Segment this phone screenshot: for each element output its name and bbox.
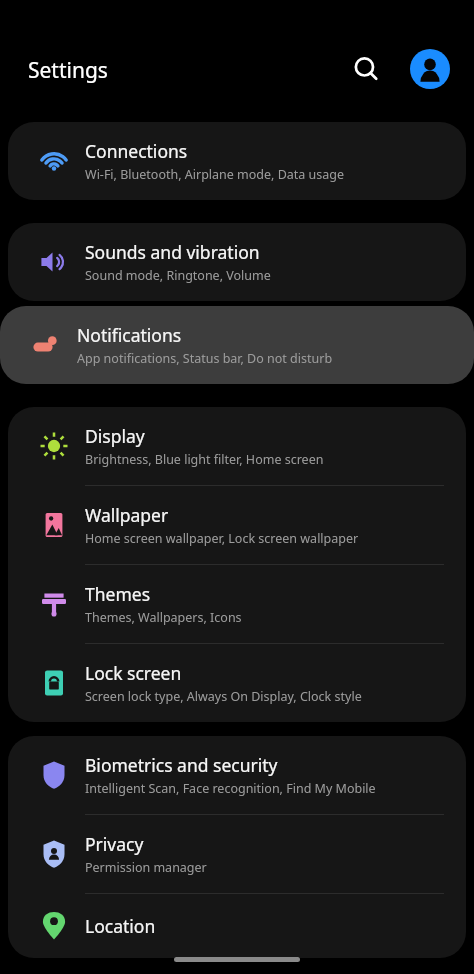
staticText: App notifications, Status bar, Do not di…	[77, 350, 333, 367]
button[interactable]: Connections	[8, 122, 466, 200]
button[interactable]: Themes	[8, 565, 466, 643]
staticText: Screen lock type, Always On Display, Clo…	[85, 688, 362, 705]
staticText: Permission manager	[85, 859, 207, 876]
staticText: Intelligent Scan, Face recognition, Find…	[85, 780, 376, 797]
staticText: Location	[85, 914, 156, 938]
button[interactable]: Sounds and vibration	[8, 223, 466, 301]
staticText: Privacy	[85, 832, 144, 856]
staticText: Sound mode, Ringtone, Volume	[85, 267, 271, 284]
button[interactable]: Location	[8, 894, 466, 958]
staticText: Connections	[85, 139, 188, 163]
button[interactable]: Account	[406, 45, 454, 93]
staticText: Lock screen	[85, 661, 182, 685]
staticText: Biometrics and security	[85, 753, 278, 777]
staticText: Display	[85, 424, 145, 448]
staticText: Wi-Fi, Bluetooth, Airplane mode, Data us…	[85, 166, 345, 183]
staticText: Brightness, Blue light filter, Home scre…	[85, 451, 324, 468]
staticText: Home screen wallpaper, Lock screen wallp…	[85, 530, 359, 547]
button[interactable]: Lock screen	[8, 644, 466, 722]
staticText: Wallpaper	[85, 503, 169, 527]
staticText: Sounds and vibration	[85, 240, 260, 264]
button[interactable]: Display	[8, 407, 466, 485]
button[interactable]: Wallpaper	[8, 486, 466, 564]
button[interactable]: Notifications	[0, 306, 474, 384]
staticText: Notifications	[77, 323, 182, 347]
staticText: Themes	[85, 582, 151, 606]
button[interactable]: Privacy	[8, 815, 466, 893]
button[interactable]: Notifications	[0, 306, 474, 384]
button[interactable]: Search	[342, 45, 390, 93]
staticText: Settings	[28, 56, 108, 85]
button[interactable]: Biometrics and security	[8, 736, 466, 814]
staticText: Themes, Wallpapers, Icons	[85, 609, 242, 626]
